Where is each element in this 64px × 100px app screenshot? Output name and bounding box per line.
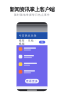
button[interactable]: 查看更多 xyxy=(25,79,39,83)
button[interactable] xyxy=(16,68,47,76)
staticText: 更多 xyxy=(41,41,43,43)
staticText: 推荐 · 本地 · 视频 xyxy=(19,39,36,45)
staticText: 查看更多 xyxy=(26,79,38,83)
button[interactable] xyxy=(16,45,47,53)
staticText: 随时随地掌握每日热点事件 xyxy=(14,13,50,17)
staticText: 新闻资讯掌上客户端 xyxy=(9,6,54,13)
button[interactable] xyxy=(16,60,47,68)
button[interactable]: 更多 xyxy=(39,41,45,43)
staticText: 今日热点头条 xyxy=(19,34,37,37)
button[interactable] xyxy=(16,53,47,60)
